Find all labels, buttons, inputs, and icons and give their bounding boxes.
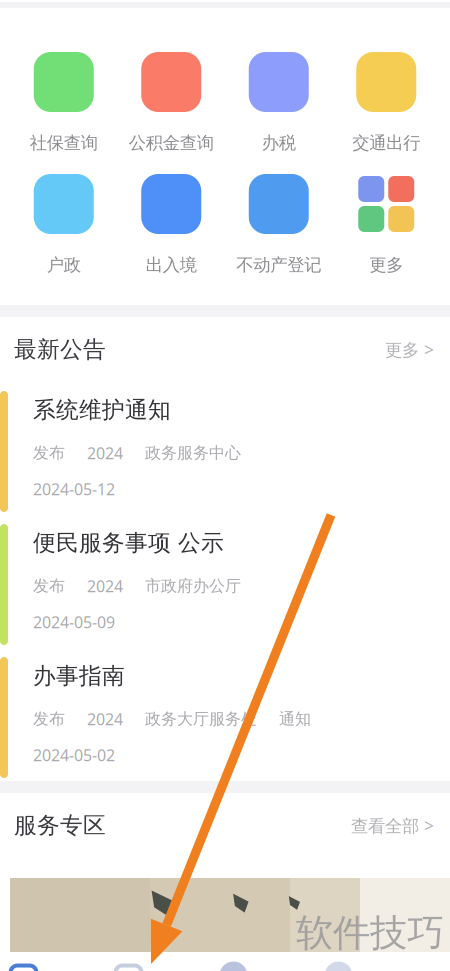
staticText: 2024-05-09 <box>33 611 115 633</box>
button[interactable]: 公积金查询 <box>117 52 225 174</box>
button[interactable]: 更多 > <box>385 338 434 361</box>
staticText: 政务大厅服务处 <box>145 709 257 729</box>
button[interactable]: 系统维护通知 <box>0 382 450 515</box>
staticText: 查看全部 > <box>351 814 434 837</box>
staticText: 2024 <box>87 708 123 730</box>
staticText: 服务专区 <box>14 812 106 839</box>
staticText: 出入境 <box>146 254 197 276</box>
staticText: 便民服务事项 公示 <box>33 529 224 557</box>
staticText: 不动产登记 <box>236 254 321 276</box>
button[interactable]: 服务 <box>76 963 181 971</box>
staticText: 办事指南 <box>33 662 125 690</box>
staticText: 通知 <box>279 709 311 729</box>
staticText: 最新公告 <box>14 336 106 363</box>
button[interactable]: 查看全部 > <box>351 814 434 837</box>
staticText: 交通出行 <box>352 132 420 154</box>
staticText: 系统维护通知 <box>33 396 171 424</box>
button[interactable]: 不动产登记 <box>225 174 332 296</box>
staticText: 政务服务中心 <box>145 443 241 463</box>
button[interactable]: 交通出行 <box>332 52 440 174</box>
staticText: 更多 <box>369 254 403 276</box>
staticText: 发布 <box>33 709 65 729</box>
staticText: 软件技巧 <box>296 910 444 956</box>
button[interactable]: 出入境 <box>117 174 225 296</box>
button[interactable]: 户政 <box>10 174 117 296</box>
button[interactable]: 首页 <box>0 963 76 971</box>
staticText: 2024 <box>87 442 123 464</box>
button[interactable]: 更多 <box>332 174 440 296</box>
staticText: 发布 <box>33 576 65 596</box>
staticText: 公积金查询 <box>129 132 214 154</box>
button[interactable]: 便民服务事项 公示 <box>0 515 450 648</box>
button[interactable]: 社保查询 <box>10 52 117 174</box>
button[interactable]: 消息 <box>181 963 286 971</box>
button[interactable]: 办事指南 <box>0 648 450 781</box>
button[interactable]: 办税 <box>225 52 332 174</box>
staticText: 2024 <box>87 575 123 597</box>
staticText: 市政府办公厅 <box>145 576 241 596</box>
staticText: 社保查询 <box>30 132 98 154</box>
staticText: 2024-05-02 <box>33 744 115 766</box>
staticText: 户政 <box>47 254 81 276</box>
staticText: 2024-05-12 <box>33 478 115 500</box>
staticText: 发布 <box>33 443 65 463</box>
button[interactable]: 我的 <box>286 963 391 971</box>
staticText: 更多 > <box>385 338 434 361</box>
staticText: 办税 <box>262 132 296 154</box>
